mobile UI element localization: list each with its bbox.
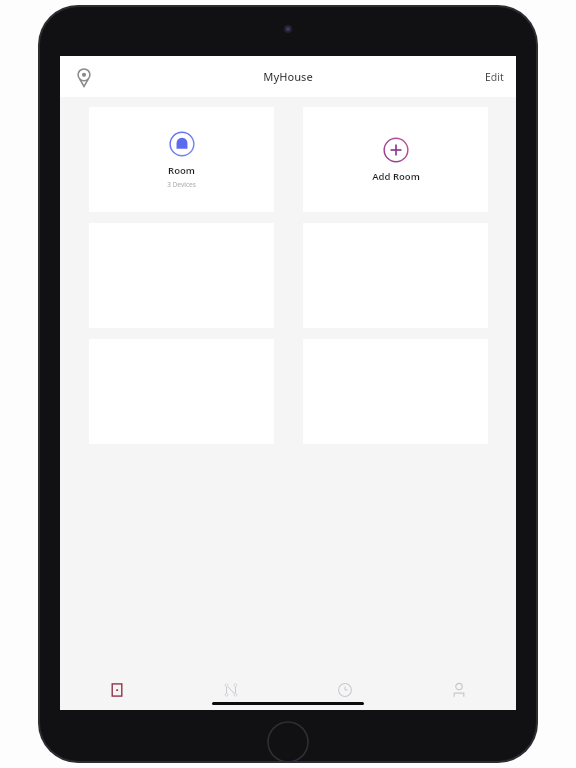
button[interactable]: Automations [174, 672, 288, 710]
staticText: Room [168, 164, 195, 177]
staticText: Add Room [372, 170, 420, 183]
button[interactable]: Rooms [60, 672, 174, 710]
button[interactable]: Room [89, 107, 274, 212]
staticText: 3 Devices [167, 180, 196, 189]
button[interactable]: Location [66, 59, 102, 95]
staticText: MyHouse [263, 69, 313, 84]
button[interactable]: Profile [402, 672, 516, 710]
button[interactable]: History [288, 672, 402, 710]
button[interactable]: Edit [473, 59, 516, 95]
staticText: Edit [485, 70, 504, 84]
button[interactable]: Add Room [303, 107, 488, 212]
